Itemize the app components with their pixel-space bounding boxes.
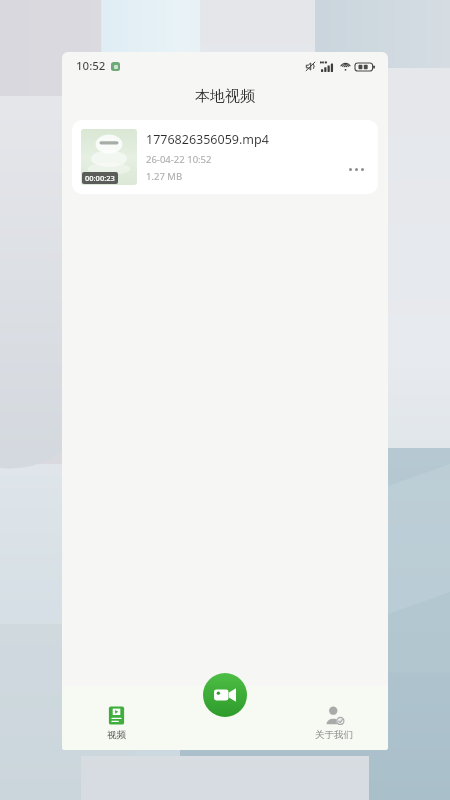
staticText: 10:52 <box>76 58 106 74</box>
button[interactable]: More options <box>343 156 369 182</box>
button[interactable]: 关于我们 <box>315 705 353 741</box>
staticText: 00:00:23 <box>85 173 115 183</box>
staticText: 26-04-22 10:52 <box>146 153 212 166</box>
staticText: 1.27 MB <box>146 170 183 183</box>
button[interactable]: 视频 <box>107 705 126 741</box>
button[interactable]: Record video <box>203 673 247 717</box>
button[interactable]: 00:00:23 <box>72 120 378 194</box>
staticText: 视频 <box>107 729 126 741</box>
staticText: 1776826356059.mp4 <box>146 131 269 148</box>
staticText: 本地视频 <box>195 87 255 106</box>
staticText: 关于我们 <box>315 729 353 741</box>
